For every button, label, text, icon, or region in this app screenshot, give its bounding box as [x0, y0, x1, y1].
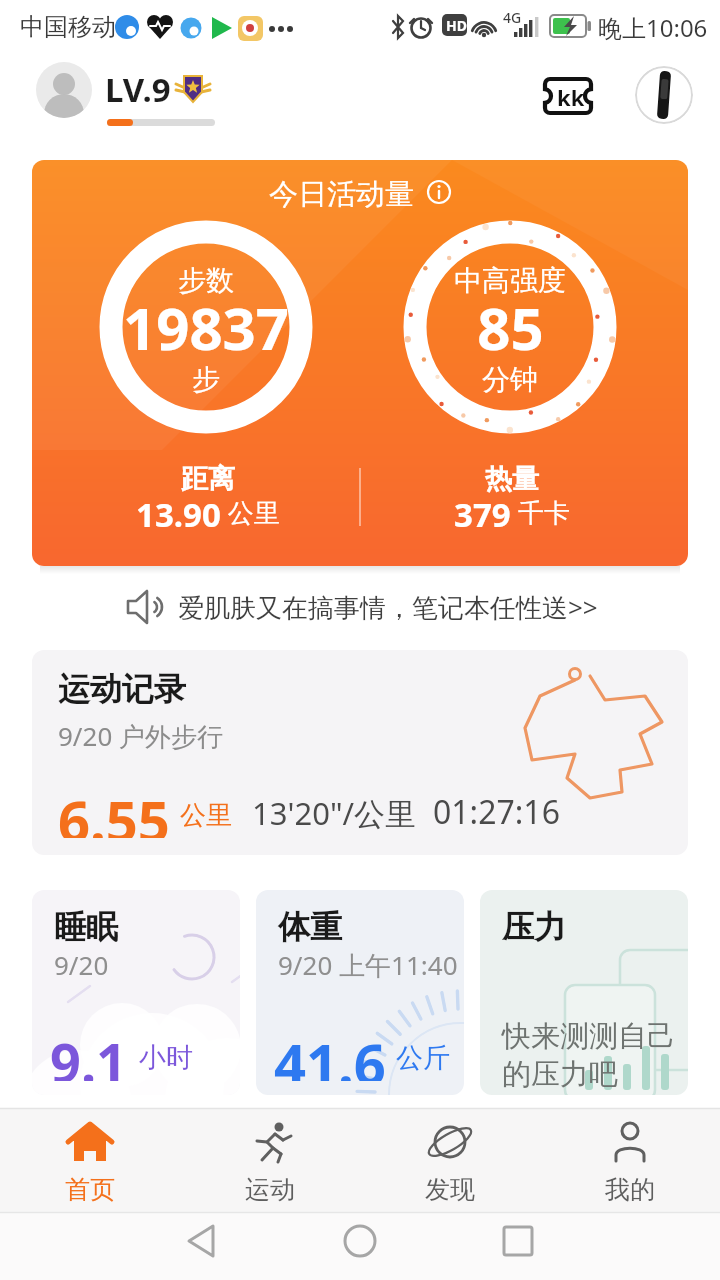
- staticText: 379: [454, 492, 511, 532]
- button[interactable]: [635, 66, 693, 124]
- button[interactable]: 压力: [480, 890, 688, 1095]
- staticText: 01:27:16: [433, 790, 560, 834]
- button[interactable]: kk: [543, 77, 593, 115]
- staticText: 体重: [278, 907, 342, 947]
- staticText: kk: [557, 82, 585, 112]
- staticText: 千卡: [511, 494, 570, 530]
- staticText: 9/20 户外步行: [58, 718, 224, 754]
- staticText: 6.55: [58, 782, 170, 838]
- staticText: 运动: [245, 1174, 295, 1205]
- button[interactable]: 爱肌肤又在搞事情，笔记本任性送>>: [120, 585, 598, 629]
- staticText: 4G: [503, 8, 522, 27]
- staticText: 9/20: [54, 947, 109, 982]
- button[interactable]: 体重: [256, 890, 464, 1095]
- button[interactable]: 运动: [200, 1112, 340, 1212]
- staticText: LV.9: [105, 67, 171, 112]
- staticText: 13'20"/公里: [252, 792, 417, 834]
- button[interactable]: 我的: [560, 1112, 700, 1212]
- staticText: 9.1: [50, 1025, 127, 1081]
- staticText: 运动记录: [58, 669, 186, 709]
- staticText: 分钟: [482, 362, 538, 397]
- staticText: 步数: [178, 263, 234, 298]
- staticText: 步: [192, 362, 220, 397]
- staticText: 首页: [65, 1174, 115, 1205]
- staticText: 中高强度: [454, 263, 566, 298]
- button[interactable]: 睡眠: [32, 890, 240, 1095]
- staticText: 19837: [123, 288, 289, 367]
- button[interactable]: [240, 1212, 480, 1280]
- staticText: 晚上10:06: [598, 11, 708, 44]
- button[interactable]: 今日活动量: [32, 160, 688, 566]
- staticText: 睡眠: [54, 907, 118, 947]
- button[interactable]: 运动记录: [32, 650, 688, 855]
- staticText: 发现: [425, 1174, 475, 1205]
- button[interactable]: [480, 1212, 720, 1280]
- staticText: HD: [446, 16, 467, 35]
- staticText: 热量: [485, 462, 539, 496]
- staticText: 公里: [221, 494, 280, 530]
- staticText: 爱肌肤又在搞事情，笔记本任性送>>: [178, 589, 598, 625]
- staticText: 距离: [181, 462, 235, 496]
- staticText: 公斤: [396, 1041, 450, 1075]
- staticText: 今日活动量: [269, 176, 414, 208]
- staticText: 41.6: [274, 1025, 386, 1081]
- staticText: 中国移动: [20, 12, 116, 42]
- staticText: 快来测测自己: [502, 1018, 676, 1055]
- staticText: 的压力吧: [502, 1056, 618, 1093]
- staticText: 压力: [502, 907, 566, 947]
- button[interactable]: [0, 1212, 240, 1280]
- staticText: 13.90: [136, 492, 221, 532]
- button[interactable]: [36, 62, 92, 118]
- button[interactable]: 首页: [20, 1112, 160, 1212]
- staticText: 85: [477, 288, 544, 367]
- staticText: 我的: [605, 1174, 655, 1205]
- staticText: 公里: [180, 799, 232, 832]
- staticText: 小时: [139, 1041, 193, 1075]
- button[interactable]: 发现: [380, 1112, 520, 1212]
- staticText: 9/20 上午11:40: [278, 947, 458, 983]
